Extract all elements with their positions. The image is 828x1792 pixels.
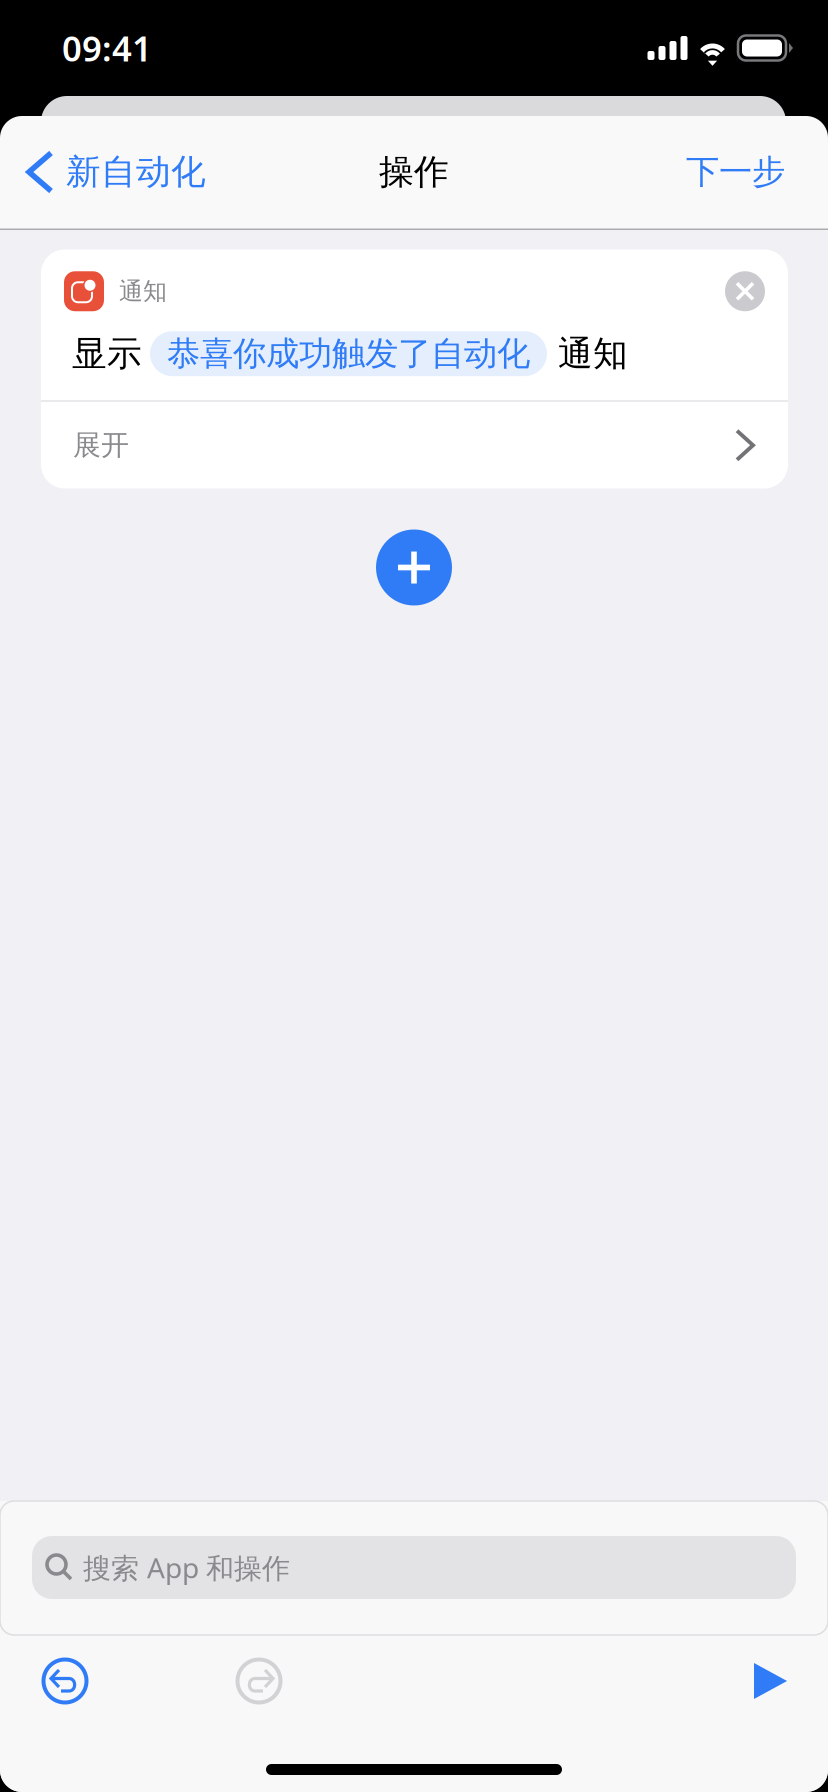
button[interactable]: 添加操作 bbox=[376, 529, 452, 605]
staticText: 09:41 bbox=[62, 25, 152, 71]
staticText: 新自动化 bbox=[66, 151, 206, 193]
button[interactable]: 搜索 App 和操作 bbox=[32, 1536, 796, 1599]
staticText: 搜索 App 和操作 bbox=[83, 1549, 290, 1586]
staticText: 恭喜你成功触发了自动化 bbox=[167, 333, 530, 374]
button[interactable]: 移除操作 bbox=[725, 271, 765, 311]
button[interactable]: 运行 bbox=[754, 1663, 787, 1699]
button[interactable]: 新自动化 bbox=[0, 116, 228, 228]
staticText: 通知 bbox=[119, 276, 167, 306]
staticText: 展开 bbox=[73, 428, 129, 462]
staticText: 下一步 bbox=[686, 151, 785, 192]
button[interactable]: 下一步 bbox=[664, 116, 828, 228]
staticText: 通知 bbox=[558, 332, 628, 375]
staticText: 显示 bbox=[72, 332, 142, 375]
button[interactable]: 展开 bbox=[41, 402, 788, 489]
button[interactable]: 撤销 bbox=[42, 1658, 88, 1704]
button[interactable]: 重做 bbox=[236, 1658, 282, 1704]
staticText: 操作 bbox=[379, 151, 449, 193]
